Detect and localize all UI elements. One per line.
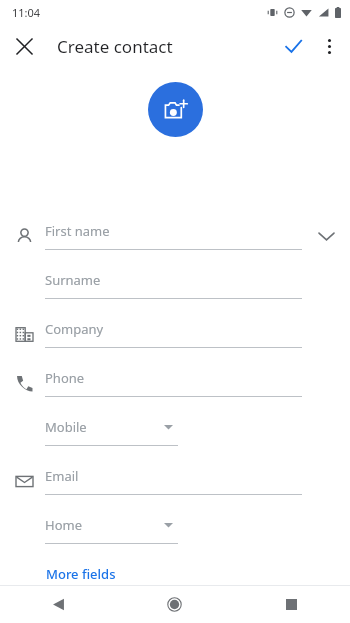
staticText: Company bbox=[45, 320, 104, 338]
button[interactable]: More options bbox=[312, 29, 346, 63]
button[interactable]: Surname bbox=[0, 260, 350, 309]
staticText: 11:04 bbox=[12, 5, 41, 20]
staticText: Home bbox=[45, 516, 82, 534]
button[interactable]: Phone bbox=[0, 358, 350, 407]
button[interactable]: Home bbox=[0, 505, 350, 554]
staticText: Surname bbox=[45, 271, 101, 289]
button[interactable]: Mobile bbox=[0, 407, 350, 456]
button[interactable]: Close bbox=[6, 28, 42, 64]
button[interactable]: Email bbox=[0, 456, 350, 505]
staticText: Create contact bbox=[57, 35, 173, 58]
staticText: Email bbox=[45, 467, 79, 485]
button[interactable]: First name bbox=[0, 211, 350, 260]
staticText: Phone bbox=[45, 369, 85, 387]
button[interactable]: Back bbox=[0, 586, 116, 623]
button[interactable]: Add photo bbox=[148, 82, 203, 137]
button[interactable]: Recent apps bbox=[233, 586, 350, 623]
button[interactable]: Home bbox=[116, 586, 233, 623]
button[interactable]: Save bbox=[274, 27, 312, 65]
button[interactable]: More fields bbox=[45, 562, 117, 586]
staticText: First name bbox=[45, 222, 110, 240]
button[interactable]: Company bbox=[0, 309, 350, 358]
staticText: Mobile bbox=[45, 418, 87, 436]
staticText: More fields bbox=[46, 565, 116, 583]
